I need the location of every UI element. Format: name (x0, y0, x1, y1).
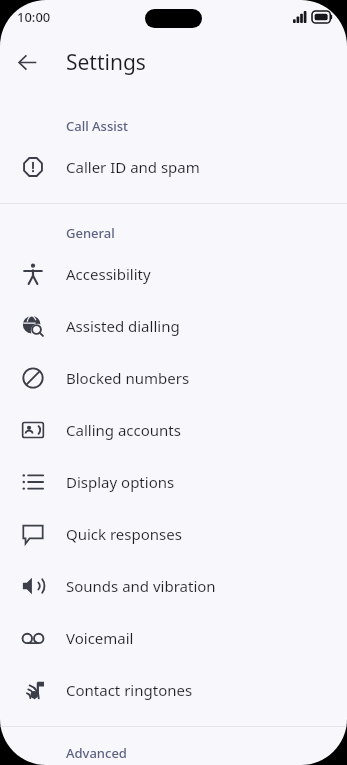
staticText: Caller ID and spam (66, 157, 200, 177)
button[interactable]: Assisted dialling (0, 300, 347, 352)
staticText: Calling accounts (66, 420, 181, 440)
staticText: Assisted dialling (66, 316, 180, 336)
staticText: Contact ringtones (66, 680, 193, 700)
button[interactable]: Display options (0, 456, 347, 508)
button[interactable]: Sounds and vibration (0, 560, 347, 612)
button[interactable]: Calling accounts (0, 404, 347, 456)
staticText: Sounds and vibration (66, 576, 216, 596)
staticText: Call Assist (66, 117, 129, 135)
staticText: Blocked numbers (66, 368, 190, 388)
staticText: Display options (66, 472, 175, 492)
staticText: 10:00 (17, 8, 51, 26)
staticText: Settings (66, 48, 146, 77)
button[interactable]: Quick responses (0, 508, 347, 560)
staticText: Voicemail (66, 628, 134, 648)
button[interactable]: Blocked numbers (0, 352, 347, 404)
staticText: Quick responses (66, 524, 182, 544)
button[interactable]: Back (6, 41, 48, 83)
staticText: General (66, 224, 115, 242)
staticText: Accessibility (66, 264, 151, 284)
staticText: Advanced (66, 744, 127, 762)
button[interactable]: Caller ID and spam (0, 141, 347, 193)
button[interactable]: Accessibility (0, 248, 347, 300)
button[interactable]: Voicemail (0, 612, 347, 664)
button[interactable]: Contact ringtones (0, 664, 347, 716)
